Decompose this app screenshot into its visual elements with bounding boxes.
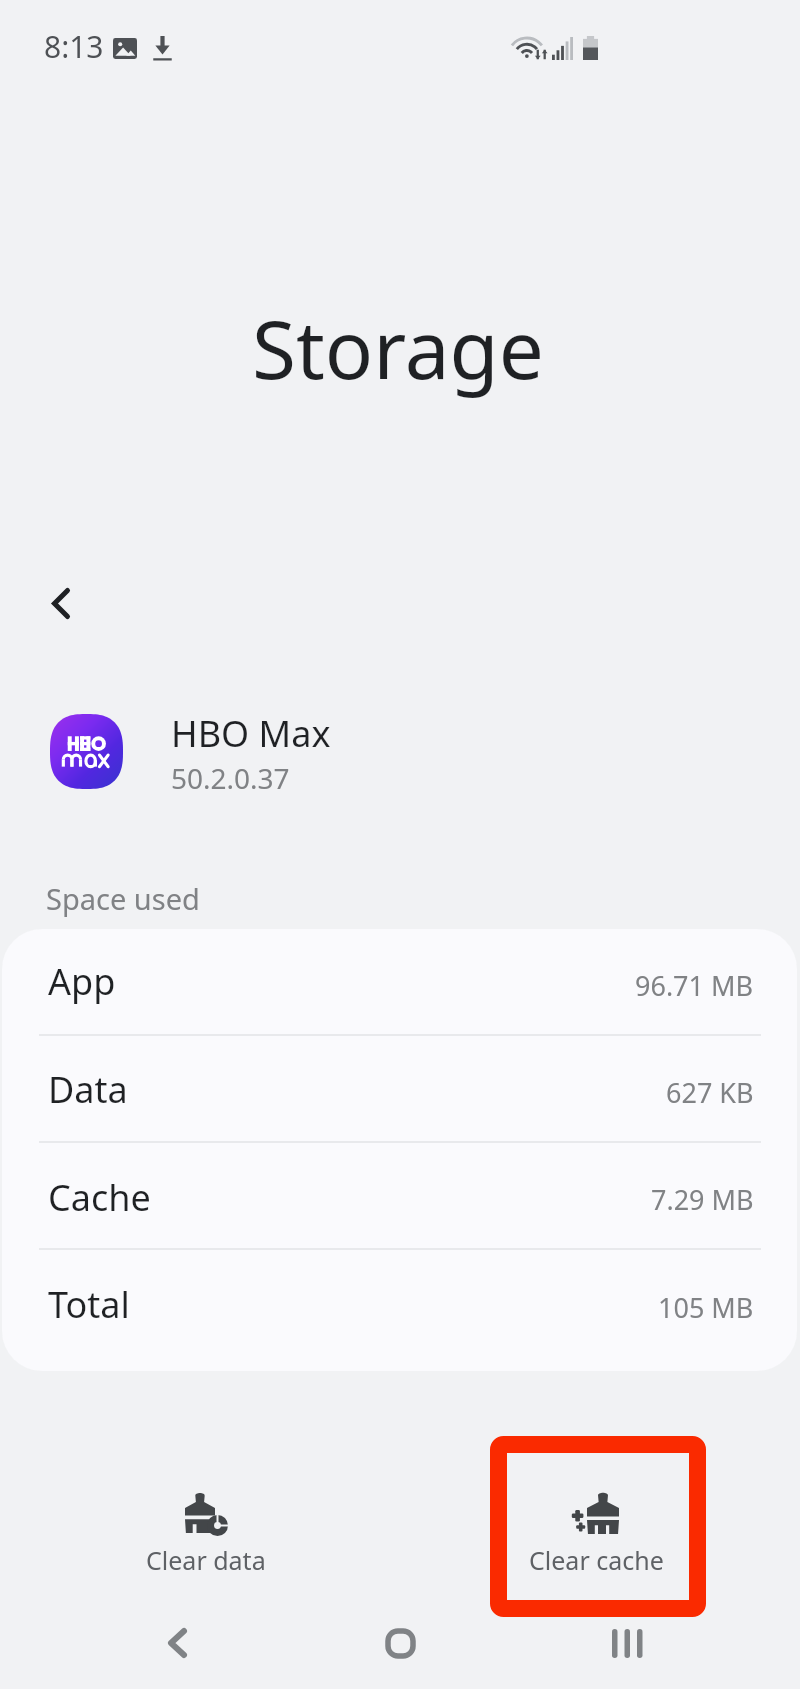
button[interactable] bbox=[60, 1460, 350, 1600]
staticText: 627 KB bbox=[666, 1074, 754, 1111]
button[interactable]: App bbox=[2, 929, 797, 1035]
staticText: Space used bbox=[46, 879, 200, 918]
staticText: Data bbox=[48, 1065, 128, 1114]
staticText: HBO Max bbox=[171, 709, 331, 758]
staticText: 96.71 MB bbox=[635, 967, 754, 1004]
staticText: 105 MB bbox=[658, 1289, 754, 1326]
staticText: 7.29 MB bbox=[651, 1181, 754, 1218]
staticText: 8:13 bbox=[44, 26, 104, 67]
staticText: Storage bbox=[252, 293, 544, 402]
button[interactable]: Data bbox=[2, 1035, 797, 1142]
staticText: Cache bbox=[48, 1173, 151, 1222]
button[interactable]: Navigate up bbox=[28, 570, 94, 636]
staticText: Clear cache bbox=[529, 1543, 664, 1577]
button[interactable]: Recent apps bbox=[595, 1611, 659, 1675]
staticText: 50.2.0.37 bbox=[171, 759, 290, 797]
button[interactable]: Home bbox=[368, 1611, 432, 1675]
button[interactable]: Total bbox=[2, 1249, 797, 1371]
staticText: Clear data bbox=[146, 1543, 266, 1577]
button[interactable]: Cache bbox=[2, 1142, 797, 1249]
button[interactable]: Back bbox=[145, 1611, 209, 1675]
staticText: Total bbox=[48, 1280, 130, 1329]
staticText: App bbox=[48, 957, 116, 1006]
button[interactable] bbox=[452, 1460, 742, 1600]
